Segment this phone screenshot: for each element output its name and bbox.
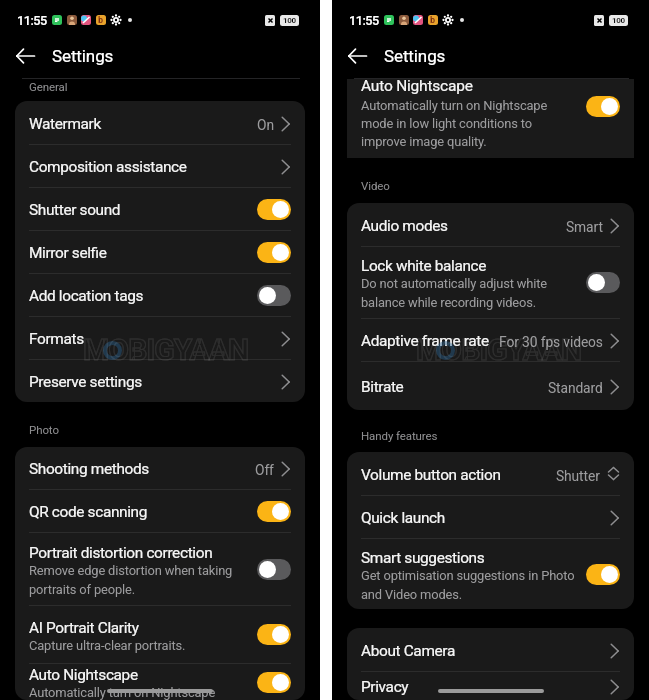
staticText: Formats [29,330,84,348]
button[interactable]: Back [5,37,46,75]
staticText: 11:55 [349,13,379,28]
staticText: improve image quality. [361,134,487,149]
staticText: Portrait distortion correction [29,544,213,562]
button[interactable]: QR code scanning [15,490,305,532]
button[interactable]: Back [337,37,378,75]
button[interactable]: Toggle off [586,272,620,293]
button[interactable]: Mirror selfie [15,231,305,273]
button[interactable]: Toggle on [257,242,291,263]
staticText: portraits of people. [29,582,135,597]
staticText: General [29,80,68,93]
button[interactable]: Portrait distortion correction [15,533,305,605]
staticText: and Video modes. [361,587,463,602]
staticText: On [257,117,274,133]
staticText: Standard [548,380,603,396]
button[interactable]: Audio modes [347,203,634,246]
staticText: Remove edge distortion when taking [29,563,233,578]
staticText: Quick launch [361,509,445,527]
button[interactable]: Privacy [347,665,634,700]
button[interactable]: Lock white balance [347,247,634,318]
button[interactable]: Toggle on [257,501,291,522]
staticText: Mirror selfie [29,244,107,262]
button[interactable]: Shutter sound [15,188,305,230]
button[interactable]: About Camera [347,628,634,671]
staticText: b [430,15,436,25]
staticText: 100 [612,16,625,25]
staticText: Bitrate [361,378,404,396]
staticText: Photo [29,423,59,436]
staticText: Shutter [556,468,600,484]
staticText: Privacy [361,678,409,696]
staticText: Do not automatically adjust white [361,276,548,291]
button[interactable]: Smart suggestions [347,539,634,609]
button[interactable]: Quick launch [347,496,634,538]
button[interactable]: Volume button action [347,452,634,495]
button[interactable]: Toggle off [257,285,291,306]
button[interactable]: Toggle on [257,199,291,220]
staticText: Auto Nightscape [29,666,138,684]
staticText: About Camera [361,642,455,660]
button[interactable]: Bitrate [347,362,634,410]
staticText: Shooting methods [29,460,149,478]
staticText: Lock white balance [361,257,487,275]
staticText: Capture ultra-clear portraits. [29,638,186,653]
staticText: Auto Nightscape [361,79,473,95]
staticText: Video [361,179,390,192]
staticText: Shutter sound [29,201,121,219]
staticText: Automatically turn on Nightscape [361,98,548,113]
button[interactable]: Toggle on [257,672,291,693]
button[interactable]: Composition assistance [15,145,305,187]
staticText: Smart [566,219,603,235]
staticText: Add location tags [29,287,144,305]
button[interactable]: Toggle on [586,96,620,117]
staticText: Get optimisation suggestions in Photo [361,568,575,583]
staticText: mode in low light conditions to [361,116,532,131]
button[interactable]: Add location tags [15,274,305,316]
staticText: Preserve settings [29,373,142,391]
staticText: Watermark [29,115,101,133]
staticText: Smart suggestions [361,549,485,567]
button[interactable]: Watermark [15,101,305,144]
staticText: balance while recording videos. [361,295,537,310]
button[interactable]: Preserve settings [15,360,305,402]
staticText: Audio modes [361,217,448,235]
button[interactable]: Adaptive frame rate [347,319,634,361]
staticText: AI Portrait Clarity [29,619,139,637]
staticText: b [98,15,104,25]
staticText: Automatically turn on Nightscape [29,685,216,700]
button[interactable]: Formats [15,317,305,359]
staticText: Composition assistance [29,158,187,176]
button[interactable]: Toggle off [257,559,291,580]
button[interactable]: Toggle on [586,564,620,585]
staticText: Adaptive frame rate [361,332,489,350]
staticText: Off [255,462,274,478]
staticText: 100 [283,16,296,25]
staticText: Settings [384,46,446,66]
staticText: Settings [52,46,114,66]
button[interactable]: Shooting methods [15,447,305,489]
button[interactable]: Toggle on [257,624,291,645]
staticText: QR code scanning [29,503,148,521]
staticText: MOBIGYAAN [416,332,582,367]
staticText: 11:55 [17,13,47,28]
staticText: Handy features [361,429,438,442]
staticText: MOBIGYAAN [83,332,249,367]
button[interactable]: Auto Nightscape [15,652,305,700]
button[interactable]: AI Portrait Clarity [15,606,305,663]
staticText: Volume button action [361,466,501,484]
staticText: For 30 fps videos [499,334,603,350]
